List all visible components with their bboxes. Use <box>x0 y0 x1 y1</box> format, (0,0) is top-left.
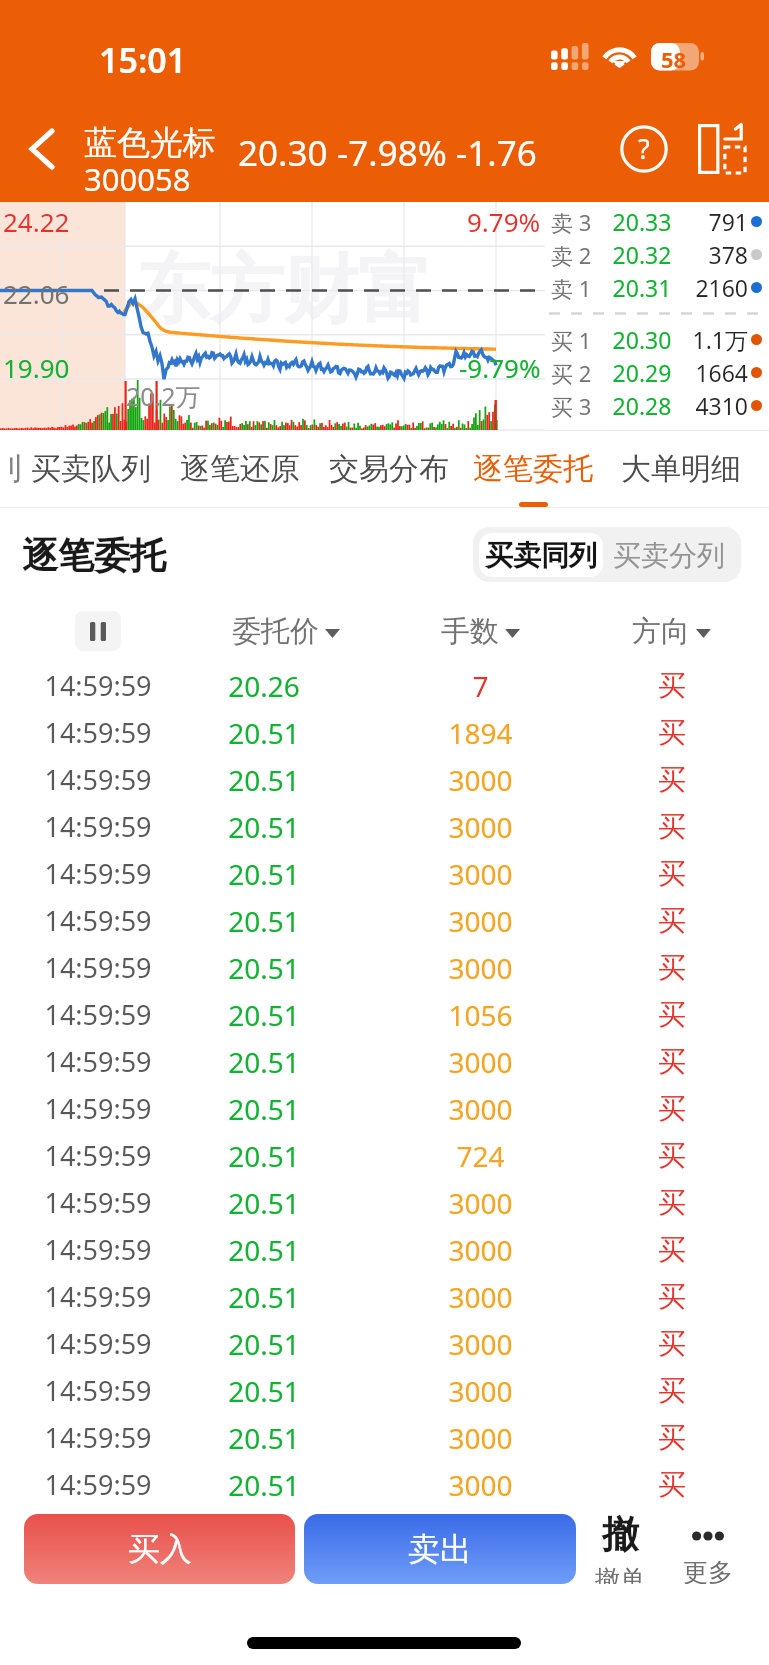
staticText: 14:59:59 <box>44 1278 152 1315</box>
button[interactable]: 14:59:59 <box>0 991 769 1038</box>
staticText: 20.51 <box>228 949 300 987</box>
button[interactable]: 买 3 <box>545 389 769 422</box>
button[interactable]: Help <box>607 112 681 186</box>
staticText: 蓝色光标 <box>84 122 216 164</box>
button[interactable]: Pause <box>75 611 121 651</box>
button[interactable]: Back <box>0 96 84 202</box>
staticText: 20.51 <box>228 1043 300 1081</box>
button[interactable]: Compare <box>683 110 761 188</box>
button[interactable]: 14:59:59 <box>0 1132 769 1179</box>
staticText: 3000 <box>448 1419 513 1457</box>
staticText: 724 <box>456 1137 505 1175</box>
staticText: 买 <box>658 1185 686 1220</box>
staticText: 3000 <box>448 902 513 940</box>
staticText: 14:59:59 <box>44 1137 152 1174</box>
staticText: 撤单 <box>595 1564 645 1584</box>
staticText: 20.51 <box>228 902 300 940</box>
staticText: 20.51 <box>228 1466 300 1504</box>
staticText: 逐笔还原 <box>180 450 300 488</box>
staticText: 14:59:59 <box>44 667 152 704</box>
staticText: 买 <box>658 1232 686 1267</box>
button[interactable]: 买卖分列 <box>603 533 735 577</box>
button[interactable]: 14:59:59 <box>0 1226 769 1273</box>
staticText: 14:59:59 <box>44 1090 152 1127</box>
staticText: 委托价 <box>232 613 319 650</box>
button[interactable]: 14:59:59 <box>0 1179 769 1226</box>
staticText: 买 <box>658 856 686 891</box>
staticText: 买 2 <box>551 358 603 388</box>
button[interactable]: 14:59:59 <box>0 897 769 944</box>
staticText: 买 <box>658 715 686 750</box>
button[interactable]: 买 1 <box>545 323 769 356</box>
staticText: 1894 <box>448 714 513 752</box>
button[interactable]: 14:59:59 <box>0 1461 769 1508</box>
staticText: -1.76 <box>456 129 537 177</box>
button[interactable]: 卖出 <box>304 1514 576 1584</box>
staticText: 14:59:59 <box>44 996 152 1033</box>
button[interactable]: 14:59:59 <box>0 1085 769 1132</box>
button[interactable]: 卖 2 <box>545 238 769 271</box>
button[interactable]: 逐笔还原 <box>171 431 309 508</box>
staticText: 791 <box>681 206 748 237</box>
button[interactable]: 14:59:59 <box>0 1367 769 1414</box>
staticText: 3000 <box>448 1325 513 1363</box>
button[interactable]: 方向 <box>611 600 731 662</box>
button[interactable]: 14:59:59 <box>0 1320 769 1367</box>
staticText: 14:59:59 <box>44 1325 152 1362</box>
button[interactable]: 14:59:59 <box>0 944 769 991</box>
staticText: 买入 <box>128 1529 192 1569</box>
staticText: 卖 3 <box>551 207 603 237</box>
staticText: 东方财富 <box>136 244 432 337</box>
button[interactable]: 14:59:59 <box>0 850 769 897</box>
staticText: 逐笔委托 <box>22 533 166 578</box>
button[interactable]: 14:59:59 <box>0 662 769 709</box>
button[interactable]: 更多 <box>666 1514 750 1584</box>
button[interactable]: 买卖队列 <box>22 431 160 508</box>
button[interactable]: 卖 3 <box>545 205 769 238</box>
button[interactable]: 撤 <box>578 1514 662 1584</box>
staticText: 买 <box>658 950 686 985</box>
staticText: 20.51 <box>228 1372 300 1410</box>
staticText: 刂 <box>0 450 25 488</box>
staticText: 买 <box>658 1326 686 1361</box>
button[interactable]: 14:59:59 <box>0 1414 769 1461</box>
button[interactable]: 买卖同列 <box>479 533 603 577</box>
button[interactable]: 买 2 <box>545 356 769 389</box>
staticText: 买卖分列 <box>613 538 725 573</box>
staticText: 14:59:59 <box>44 1184 152 1221</box>
staticText: 14:59:59 <box>44 1419 152 1456</box>
staticText: 14:59:59 <box>44 1231 152 1268</box>
staticText: 20.32 <box>603 239 681 270</box>
staticText: 2160 <box>681 272 748 303</box>
button[interactable]: 14:59:59 <box>0 1273 769 1320</box>
staticText: 9.79% <box>467 204 541 239</box>
staticText: 20.33 <box>603 206 681 237</box>
staticText: 14:59:59 <box>44 1043 152 1080</box>
staticText: 3000 <box>448 949 513 987</box>
staticText: 20.51 <box>228 1419 300 1457</box>
staticText: 20.30 <box>238 129 328 177</box>
button[interactable]: 交易分布 <box>320 431 458 508</box>
button[interactable]: 14:59:59 <box>0 709 769 756</box>
staticText: 3000 <box>448 1184 513 1222</box>
staticText: 3000 <box>448 1278 513 1316</box>
staticText: 买 1 <box>551 325 603 355</box>
staticText: 手数 <box>441 613 499 650</box>
button[interactable]: 买入 <box>24 1514 295 1584</box>
staticText: 58 <box>661 44 687 72</box>
staticText: 买卖队列 <box>31 450 151 488</box>
button[interactable]: 14:59:59 <box>0 1038 769 1085</box>
button[interactable]: 手数 <box>420 600 540 662</box>
staticText: 14:59:59 <box>44 1372 152 1409</box>
button[interactable]: 14:59:59 <box>0 803 769 850</box>
button[interactable]: 大单明细 <box>612 431 750 508</box>
button[interactable]: 14:59:59 <box>0 756 769 803</box>
staticText: 4310 <box>681 390 748 421</box>
button[interactable]: 委托价 <box>226 600 346 662</box>
staticText: 买卖同列 <box>485 538 597 573</box>
staticText: 3000 <box>448 808 513 846</box>
button[interactable]: 逐笔委托 <box>464 431 602 508</box>
button[interactable]: 卖 1 <box>545 271 769 304</box>
staticText: 3000 <box>448 1466 513 1504</box>
staticText: -7.98% <box>337 129 447 177</box>
